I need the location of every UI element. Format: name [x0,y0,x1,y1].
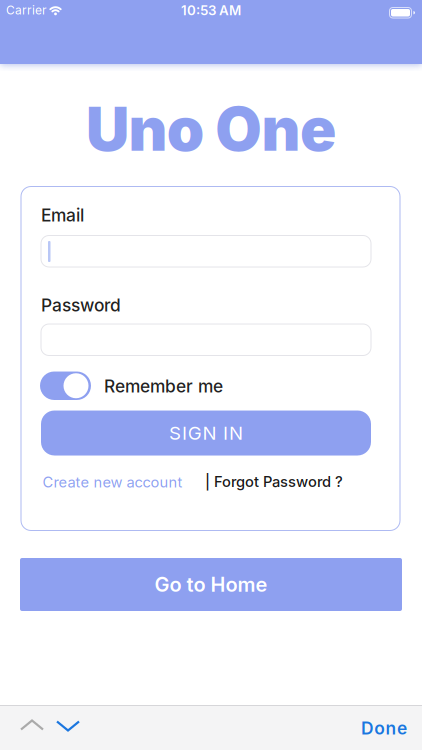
button[interactable]: | Forgot Password ? [205,473,343,490]
staticText: Remember me [104,376,223,396]
button[interactable]: Password [40,323,371,356]
button[interactable]: Previous field [19,716,45,734]
staticText: | Forgot Password ? [205,473,343,490]
button[interactable]: Go to Home [20,558,402,611]
button[interactable]: Done [361,718,407,738]
staticText: Go to Home [154,573,267,596]
button[interactable]: SIGN IN [41,410,371,455]
staticText: Uno One [86,93,336,164]
button[interactable]: Email [40,235,371,267]
staticText: Carrier [6,3,47,17]
staticText: Create new account [42,473,182,491]
button[interactable]: Next field [55,716,81,734]
staticText: Email [41,205,84,225]
staticText: Password [41,295,121,315]
button[interactable]: Create new account [42,473,182,491]
button[interactable]: Remember me [40,371,91,400]
staticText: SIGN IN [169,422,243,444]
staticText: 10:53 AM [181,2,241,18]
staticText: Done [361,718,407,738]
